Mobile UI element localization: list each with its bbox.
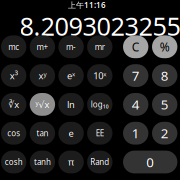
staticText: tanh <box>34 157 51 167</box>
staticText: m- <box>66 41 76 52</box>
staticText: ln <box>67 98 75 111</box>
staticText: cos <box>7 128 20 138</box>
button[interactable]: mc <box>1 35 26 58</box>
staticText: C <box>132 39 140 55</box>
staticText: log₁₀ <box>91 99 109 110</box>
button[interactable]: % <box>152 35 177 58</box>
staticText: tan <box>36 128 48 138</box>
button[interactable]: ln <box>58 93 84 116</box>
staticText: EE <box>96 128 104 138</box>
staticText: 0 <box>146 153 154 171</box>
staticText: Rand <box>90 157 109 167</box>
button[interactable]: cosh <box>1 151 26 173</box>
button[interactable]: 5 <box>152 93 177 116</box>
staticText: mc <box>8 41 19 52</box>
button[interactable]: xʸ <box>30 64 55 87</box>
button[interactable]: Rand <box>87 151 112 173</box>
button[interactable]: mr <box>87 35 112 58</box>
staticText: m+ <box>36 41 48 52</box>
button[interactable]: π <box>58 151 84 173</box>
staticText: eˣ <box>67 69 75 82</box>
button[interactable]: 0 <box>123 151 177 173</box>
staticText: π <box>68 156 74 168</box>
button[interactable]: 10ˣ <box>87 64 112 87</box>
staticText: 8.20930232558 <box>19 9 180 43</box>
button[interactable]: m- <box>58 35 84 58</box>
button[interactable]: log₁₀ <box>87 93 112 116</box>
staticText: x³ <box>10 69 18 82</box>
staticText: 5 <box>161 95 169 113</box>
button[interactable]: C <box>123 35 148 58</box>
staticText: 4 <box>132 95 140 113</box>
button[interactable]: tanh <box>30 151 55 173</box>
staticText: xʸ <box>38 69 46 82</box>
staticText: 8 <box>161 67 169 84</box>
button[interactable]: m+ <box>30 35 55 58</box>
staticText: cosh <box>5 157 23 167</box>
staticText: e <box>69 127 74 139</box>
button[interactable]: 4 <box>123 93 148 116</box>
staticText: ∛x <box>8 98 19 111</box>
staticText: mr <box>95 41 105 52</box>
button[interactable]: 2 <box>152 122 177 145</box>
button[interactable]: tan <box>30 122 55 145</box>
staticText: % <box>160 39 170 55</box>
staticText: 2 <box>161 124 169 142</box>
button[interactable]: ∛x <box>1 93 26 116</box>
button[interactable]: x³ <box>1 64 26 87</box>
staticText: 上午11:16 <box>68 0 106 10</box>
button[interactable]: 7 <box>123 64 148 87</box>
button[interactable]: 1 <box>123 122 148 145</box>
button[interactable]: 8 <box>152 64 177 87</box>
button[interactable]: ʸ√x <box>30 93 55 116</box>
button[interactable]: cos <box>1 122 26 145</box>
button[interactable]: EE <box>87 122 112 145</box>
button[interactable]: e <box>58 122 84 145</box>
staticText: 1 <box>132 124 140 142</box>
staticText: 7 <box>132 67 140 84</box>
staticText: 10ˣ <box>93 69 106 82</box>
button[interactable]: eˣ <box>58 64 84 87</box>
staticText: ʸ√x <box>35 98 49 111</box>
